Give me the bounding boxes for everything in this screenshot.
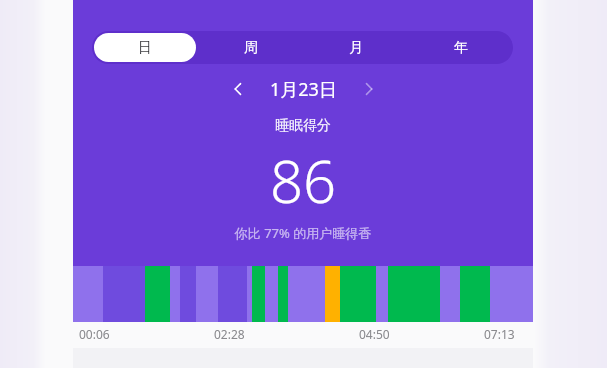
- staticText: 年: [454, 39, 468, 57]
- staticText: 02:28: [214, 326, 245, 342]
- button[interactable]: Previous day: [224, 75, 252, 103]
- button[interactable]: Next day: [355, 75, 383, 103]
- staticText: 04:50: [359, 326, 390, 342]
- staticText: 86: [73, 141, 533, 220]
- staticText: 日: [138, 39, 152, 57]
- button[interactable]: 月: [305, 33, 406, 62]
- button[interactable]: 日: [94, 33, 196, 62]
- staticText: 你比 77% 的用户睡得香: [73, 224, 533, 242]
- staticText: 周: [244, 39, 258, 57]
- staticText: 睡眠得分: [73, 117, 533, 135]
- button[interactable]: 年: [410, 33, 511, 62]
- button[interactable]: 周: [200, 33, 301, 62]
- button[interactable]: Sleep stages timeline: [73, 266, 533, 322]
- staticText: 1月23日: [270, 77, 337, 102]
- staticText: 00:06: [79, 326, 110, 342]
- staticText: 07:13: [484, 326, 515, 342]
- staticText: 月: [349, 39, 363, 57]
